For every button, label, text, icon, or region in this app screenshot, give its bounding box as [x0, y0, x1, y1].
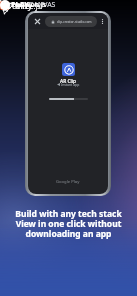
button[interactable]: More options: [97, 16, 107, 26]
staticText: unity: [12, 0, 33, 12]
button[interactable]: unity: [0, 0, 33, 12]
button[interactable]: babylon.js: [0, 0, 46, 10]
staticText: clip-creator-studio.com: [57, 20, 92, 24]
staticText: Build with any tech stack View in one cl…: [15, 208, 122, 239]
button[interactable]: Close: [32, 16, 42, 26]
staticText: PLAY: [11, 0, 29, 10]
button[interactable]: three.js: [0, 0, 41, 14]
staticText: babylon.js: [12, 0, 46, 10]
staticText: three.js: [16, 2, 41, 12]
staticText: CANVAS: [29, 0, 56, 10]
button[interactable]: PLAY: [0, 0, 56, 10]
staticText: AR Clip: [60, 78, 77, 85]
staticText: Instant app: [61, 82, 80, 87]
button[interactable]: clip-creator-studio.com: [45, 16, 97, 27]
staticText: Google Play: [56, 179, 80, 185]
